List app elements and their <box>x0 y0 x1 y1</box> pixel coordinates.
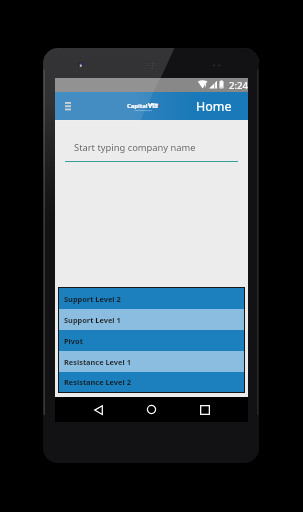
button[interactable]: Support Level 2 <box>59 288 244 309</box>
staticText: 2:24 <box>229 79 248 92</box>
staticText: Resistance Level 2 <box>64 377 131 387</box>
staticText: Capital <box>127 102 148 110</box>
staticText: Start typing company name <box>74 141 196 154</box>
button[interactable]: Recent apps <box>192 397 218 422</box>
staticText: Support Level 2 <box>64 294 121 304</box>
button[interactable]: Open navigation drawer <box>59 93 77 119</box>
button[interactable]: Resistance Level 2 <box>59 372 244 392</box>
button[interactable]: Resistance Level 1 <box>59 351 244 372</box>
button[interactable]: Home <box>138 397 164 422</box>
staticText: Resistance Level 1 <box>64 357 131 367</box>
staticText: Home <box>196 98 232 115</box>
staticText: Via <box>148 101 158 110</box>
button[interactable]: Back <box>85 397 111 422</box>
staticText: Support Level 1 <box>64 315 121 325</box>
button[interactable]: Pivot <box>59 330 244 351</box>
button[interactable]: Support Level 1 <box>59 309 244 330</box>
staticText: Pivot <box>64 336 83 346</box>
